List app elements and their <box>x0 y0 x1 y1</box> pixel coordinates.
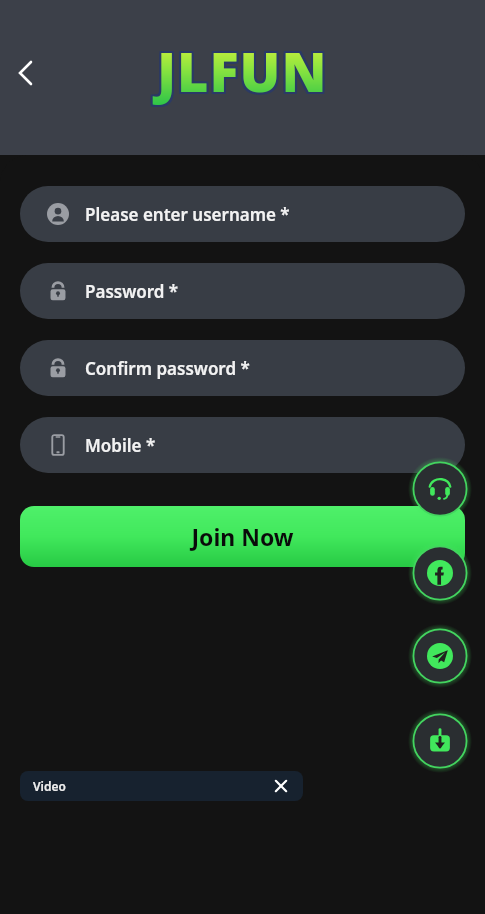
staticText: Mobile * <box>85 434 156 457</box>
staticText: JLFUN <box>159 34 330 108</box>
button[interactable]: Back <box>6 53 46 93</box>
staticText: Video <box>33 778 66 794</box>
button[interactable]: Telegram <box>408 624 472 688</box>
button[interactable]: Video <box>20 771 303 801</box>
staticText: Confirm password * <box>85 357 250 380</box>
button[interactable]: Password * <box>20 263 465 319</box>
staticText: JLFUN <box>157 36 328 110</box>
button[interactable]: Facebook <box>408 541 472 605</box>
button[interactable]: Download app <box>408 709 472 773</box>
button[interactable]: Join Now <box>20 506 465 567</box>
button[interactable]: Customer support <box>408 457 472 521</box>
button[interactable]: Please enter username * <box>20 186 465 242</box>
staticText: JLFUN <box>155 32 326 106</box>
staticText: JLFUN <box>155 34 326 108</box>
button[interactable]: Mobile * <box>20 417 465 473</box>
staticText: JLFUN <box>159 36 330 110</box>
staticText: JLFUN <box>159 32 330 106</box>
staticText: JLFUN <box>157 32 328 106</box>
button[interactable]: Close <box>272 777 290 795</box>
staticText: Join Now <box>191 521 294 552</box>
staticText: Please enter username * <box>85 203 290 226</box>
staticText: JLFUN <box>157 34 328 108</box>
staticText: JLFUN <box>155 36 326 110</box>
button[interactable]: Confirm password * <box>20 340 465 396</box>
staticText: Password * <box>85 280 179 303</box>
